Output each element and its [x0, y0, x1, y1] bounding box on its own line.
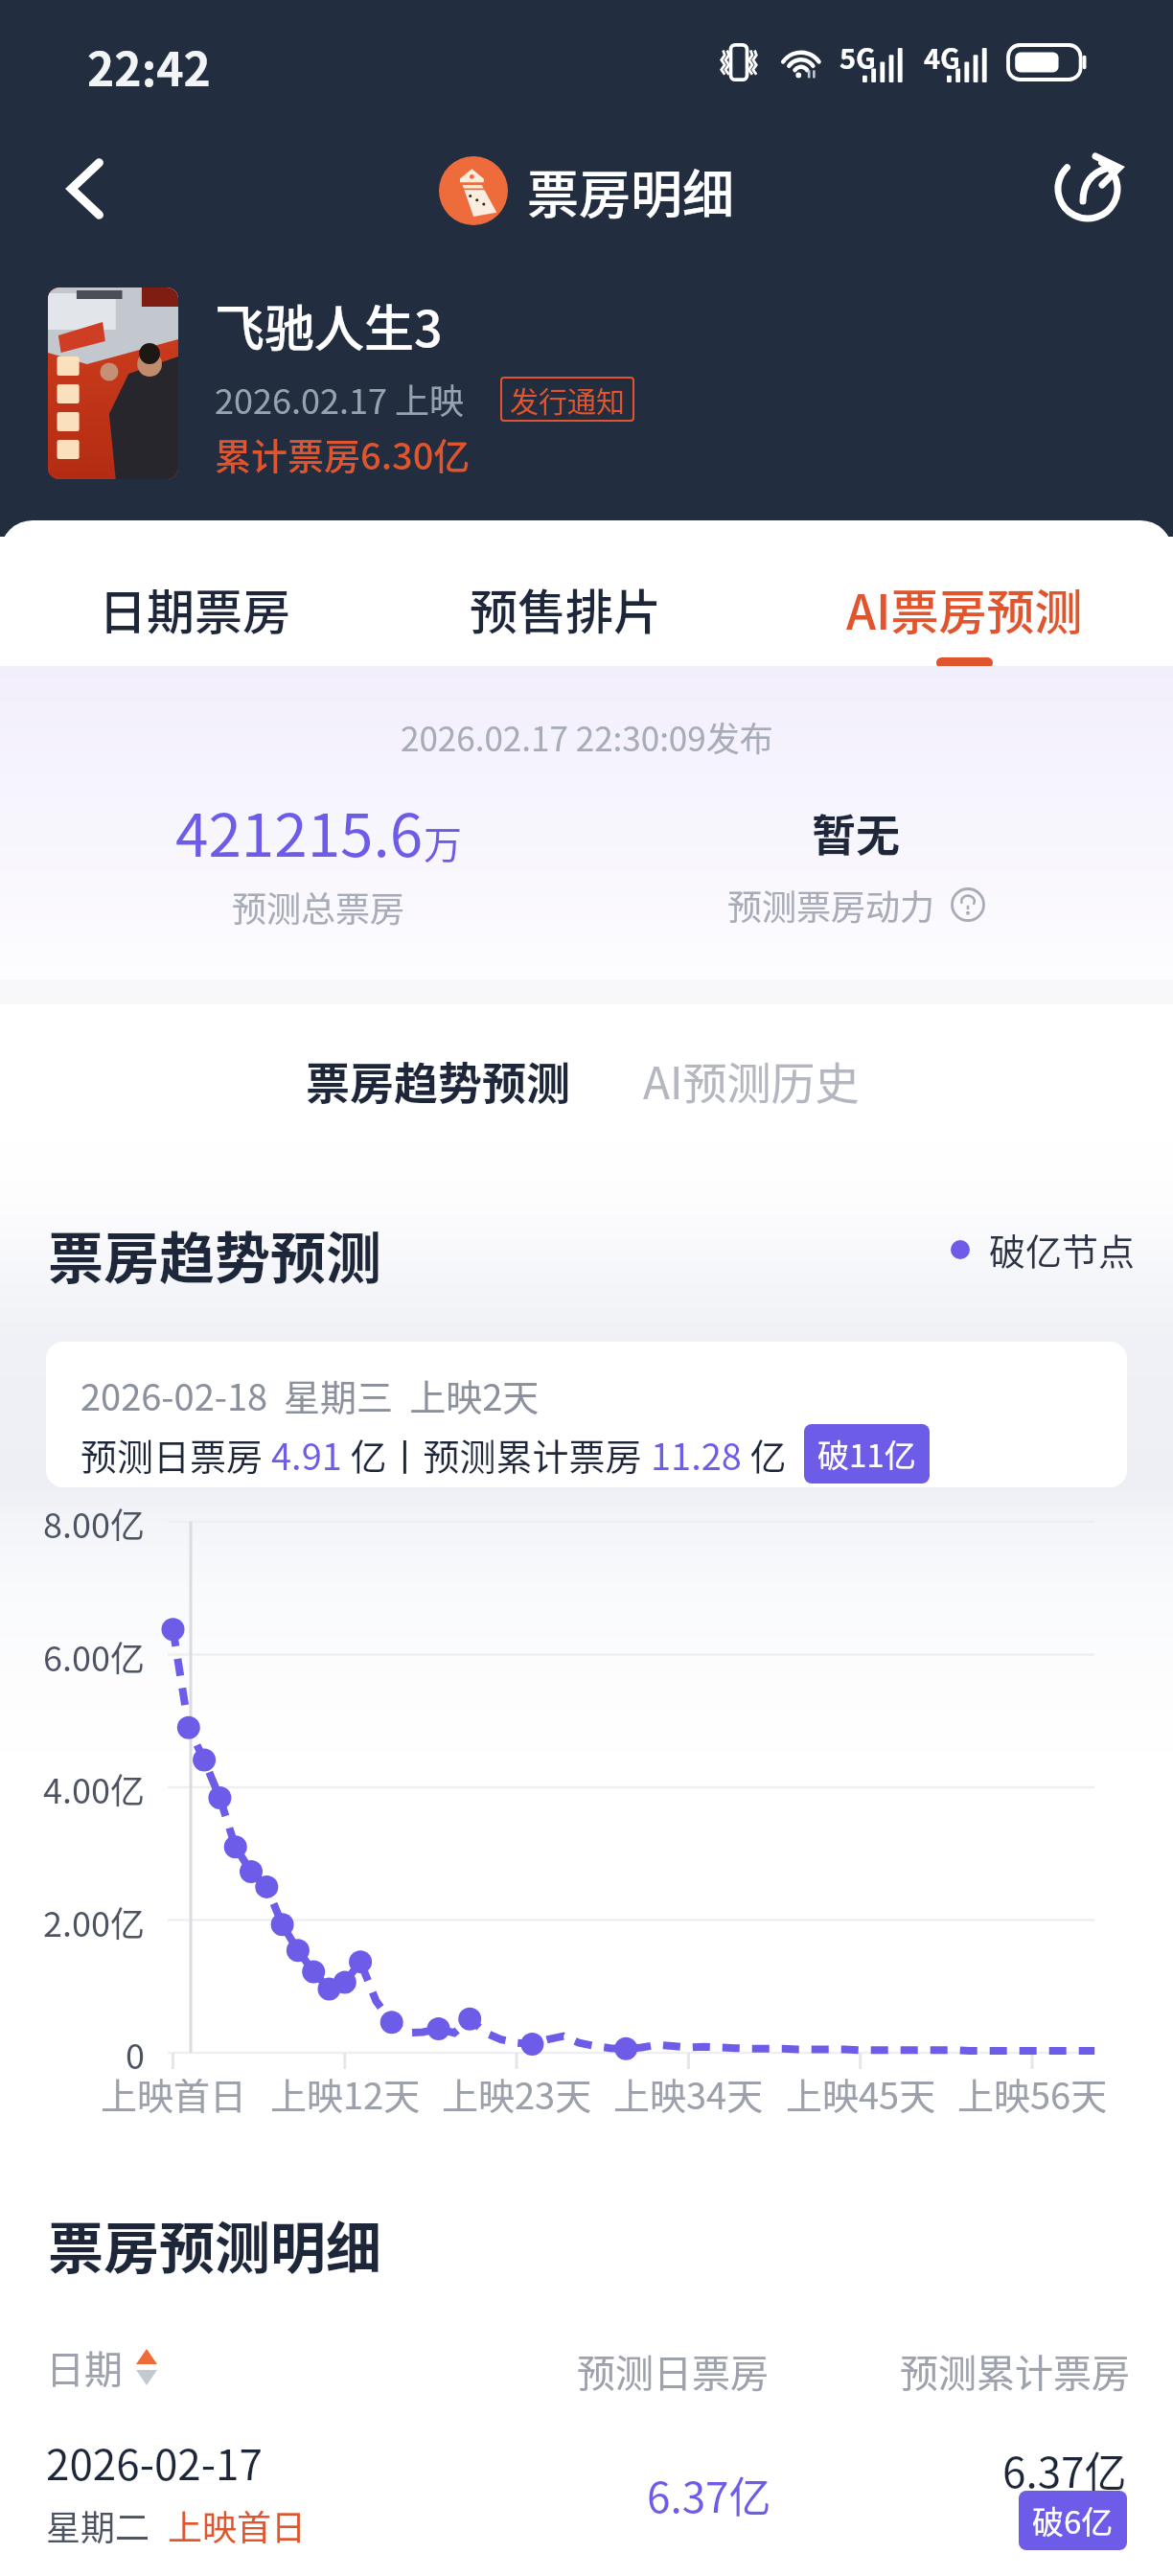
- button[interactable]: AI预测历史: [643, 1048, 860, 1113]
- staticText: 2026-02-17: [46, 2431, 263, 2493]
- staticText: 预测日票房: [80, 1428, 271, 1481]
- staticText: 票房预测明细: [48, 2204, 382, 2285]
- staticText: AI预测历史: [643, 1048, 860, 1113]
- staticText: 8.00亿: [43, 1498, 145, 1548]
- staticText: 破亿节点: [989, 1223, 1136, 1276]
- staticText: 票房趋势预测: [306, 1048, 570, 1113]
- staticText: 上映23天: [442, 2067, 592, 2120]
- staticText: 上映首日: [168, 2500, 307, 2550]
- staticText: 2026-02-18 星期三 上映2天: [80, 1368, 540, 1421]
- staticText: 暂无: [812, 800, 900, 864]
- staticText: 4.91: [271, 1428, 342, 1481]
- staticText: 上映首日: [101, 2067, 247, 2120]
- staticText: 2026.02.17 22:30:09发布: [401, 712, 773, 761]
- staticText: 破11亿: [817, 1431, 916, 1477]
- staticText: 上映45天: [786, 2067, 936, 2120]
- staticText: 发行通知: [510, 379, 625, 420]
- button[interactable]: 预售排片: [412, 574, 719, 668]
- staticText: 累计票房6.30亿: [215, 427, 471, 480]
- staticText: 预测总票房: [232, 882, 405, 931]
- staticText: 飞驰人生3: [215, 289, 443, 361]
- staticText: 破6亿: [1032, 2497, 1114, 2543]
- button[interactable]: AI票房预测: [811, 574, 1117, 668]
- staticText: 上映12天: [270, 2067, 421, 2120]
- staticText: 票房趋势预测: [48, 1214, 382, 1295]
- button[interactable]: Share: [1030, 131, 1145, 246]
- staticText: 万: [424, 815, 462, 870]
- staticText: 上映56天: [957, 2067, 1108, 2120]
- staticText: 日期: [46, 2339, 123, 2395]
- staticText: 6.37亿: [647, 2464, 771, 2525]
- staticText: 预售排片: [470, 574, 661, 643]
- button[interactable]: 票房趋势预测: [306, 1048, 570, 1137]
- staticText: 票房明细: [527, 153, 734, 228]
- staticText: 11.28: [651, 1428, 742, 1481]
- button[interactable]: Back: [28, 131, 143, 246]
- staticText: 预测累计票房: [900, 2343, 1130, 2399]
- staticText: 2026.02.17 上映: [215, 374, 464, 424]
- button[interactable]: 2026-02-17: [0, 2410, 1173, 2535]
- staticText: 上映34天: [613, 2067, 764, 2120]
- staticText: 日期票房: [99, 574, 290, 643]
- staticText: 0: [126, 2029, 145, 2079]
- staticText: 预测票房动力: [727, 880, 935, 930]
- staticText: 亿: [742, 1428, 787, 1481]
- staticText: 5G: [839, 36, 876, 77]
- staticText: 星期二: [46, 2500, 150, 2550]
- staticText: 421215.6: [175, 788, 424, 874]
- staticText: 6.00亿: [43, 1631, 145, 1681]
- staticText: 亿丨预测累计票房: [342, 1428, 651, 1481]
- button[interactable]: 日期: [46, 2339, 157, 2395]
- button[interactable]: 发行通知: [500, 377, 634, 422]
- staticText: 4.00亿: [43, 1763, 145, 1813]
- staticText: AI票房预测: [846, 574, 1083, 643]
- staticText: 预测日票房: [577, 2343, 769, 2399]
- button[interactable]: 日期票房: [41, 574, 348, 668]
- staticText: 6.37亿: [1002, 2439, 1127, 2500]
- staticText: 22:42: [87, 33, 211, 100]
- staticText: 2.00亿: [43, 1897, 145, 1946]
- staticText: 4G: [924, 36, 960, 77]
